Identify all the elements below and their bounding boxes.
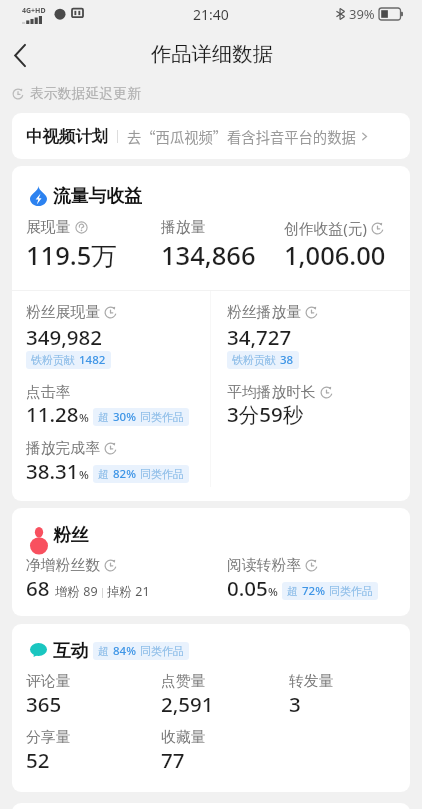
- staticText: 4G+HD: [22, 6, 46, 16]
- staticText: %: [79, 410, 89, 426]
- staticText: 3: [289, 690, 301, 718]
- staticText: 365: [26, 690, 62, 718]
- staticText: 展现量: [26, 218, 71, 237]
- staticText: 349,982: [26, 323, 102, 351]
- staticText: 1,006.00: [284, 238, 386, 273]
- staticText: 77: [161, 746, 185, 774]
- staticText: 铁粉贡献: [232, 353, 276, 367]
- button[interactable]: Back: [0, 31, 41, 79]
- staticText: 流量与收益: [53, 185, 142, 207]
- staticText: %: [79, 467, 89, 483]
- staticText: 82%: [113, 466, 136, 482]
- staticText: 119.5万: [26, 238, 117, 273]
- staticText: 阅读转粉率: [227, 556, 301, 575]
- staticText: 创作收益(元): [284, 218, 367, 238]
- staticText: 点击率: [26, 383, 71, 402]
- staticText: 作品详细数据: [151, 41, 273, 67]
- staticText: 表示数据延迟更新: [30, 85, 142, 103]
- staticText: 3分59秒: [227, 400, 304, 428]
- staticText: 粉丝: [53, 524, 89, 546]
- staticText: 去“西瓜视频”看含抖音平台的数据: [127, 126, 356, 147]
- staticText: 超: [98, 410, 109, 424]
- staticText: 38.31: [26, 457, 79, 485]
- staticText: 同类作品: [140, 467, 184, 481]
- staticText: 中视频计划: [26, 126, 108, 147]
- staticText: 38: [280, 352, 294, 368]
- staticText: 超: [98, 644, 109, 658]
- staticText: 134,866: [161, 238, 256, 273]
- staticText: 超: [287, 584, 298, 598]
- staticText: 1482: [79, 352, 106, 368]
- staticText: 播放完成率: [26, 439, 100, 458]
- staticText: 同类作品: [329, 584, 373, 598]
- staticText: 分享量: [26, 728, 71, 747]
- staticText: 评论量: [26, 672, 71, 691]
- staticText: 同类作品: [140, 644, 184, 658]
- staticText: 净增粉丝数: [26, 556, 100, 575]
- staticText: 点赞量: [161, 672, 206, 691]
- staticText: 11.28: [26, 400, 79, 428]
- staticText: 转发量: [289, 672, 334, 691]
- staticText: 72%: [302, 583, 325, 599]
- staticText: 增粉 89: [55, 583, 98, 600]
- staticText: 39%: [349, 5, 375, 23]
- staticText: %: [268, 584, 278, 600]
- staticText: 铁粉贡献: [31, 353, 75, 367]
- staticText: 播放量: [161, 218, 206, 237]
- staticText: 掉粉 21: [107, 583, 150, 600]
- staticText: 超: [98, 467, 109, 481]
- staticText: 互动: [53, 640, 89, 662]
- staticText: 84%: [113, 643, 136, 659]
- staticText: 30%: [113, 409, 136, 425]
- staticText: 粉丝展现量: [26, 303, 100, 322]
- staticText: 同类作品: [140, 410, 184, 424]
- staticText: 0.05: [227, 574, 268, 602]
- staticText: 68: [26, 574, 50, 602]
- staticText: 2,591: [161, 690, 214, 718]
- staticText: 粉丝播放量: [227, 303, 301, 322]
- staticText: 52: [26, 746, 50, 774]
- staticText: 收藏量: [161, 728, 206, 747]
- staticText: 34,727: [227, 323, 292, 351]
- staticText: 21:40: [193, 5, 229, 24]
- staticText: 平均播放时长: [227, 383, 316, 402]
- button[interactable]: 中视频计划: [12, 113, 410, 159]
